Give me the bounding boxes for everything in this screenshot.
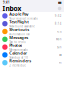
staticText: 2 items due xyxy=(9,64,26,67)
button[interactable]: Photos xyxy=(0,43,64,51)
staticText: Messages xyxy=(9,35,28,40)
staticText: Sun xyxy=(57,45,62,49)
staticText: Mon xyxy=(56,37,62,41)
staticText: Yest xyxy=(57,30,62,33)
staticText: Your receipt is ready xyxy=(9,17,37,20)
staticText: Photos xyxy=(9,42,22,48)
staticText: New build available xyxy=(9,25,35,28)
button[interactable]: Calendar xyxy=(0,51,64,59)
staticText: 9:32 xyxy=(55,14,62,18)
staticText: 8:14 xyxy=(55,22,62,25)
button[interactable]: TestFlight xyxy=(0,20,64,28)
button[interactable]: Reminders xyxy=(0,59,64,67)
staticText: TestFlight xyxy=(9,19,29,24)
button[interactable]: Messages xyxy=(0,35,64,43)
staticText: Automation ran xyxy=(9,33,30,36)
staticText: Calendar xyxy=(9,50,27,56)
staticText: Fri xyxy=(59,61,62,64)
staticText: Tap to reply xyxy=(9,40,25,44)
staticText: Shortcuts xyxy=(9,27,29,32)
staticText: Memory ready xyxy=(9,48,27,52)
staticText: 9:41 xyxy=(3,1,10,4)
staticText: Sat xyxy=(59,53,62,57)
staticText: Apple Pay xyxy=(9,11,28,17)
button[interactable]: Shortcuts xyxy=(0,28,64,35)
staticText: Standup at 10 xyxy=(9,56,28,59)
staticText: Inbox xyxy=(3,4,22,13)
staticText: Reminders xyxy=(9,58,31,63)
button[interactable]: Apple Pay xyxy=(0,12,64,20)
staticText: ▮▮▮ xyxy=(58,1,61,4)
